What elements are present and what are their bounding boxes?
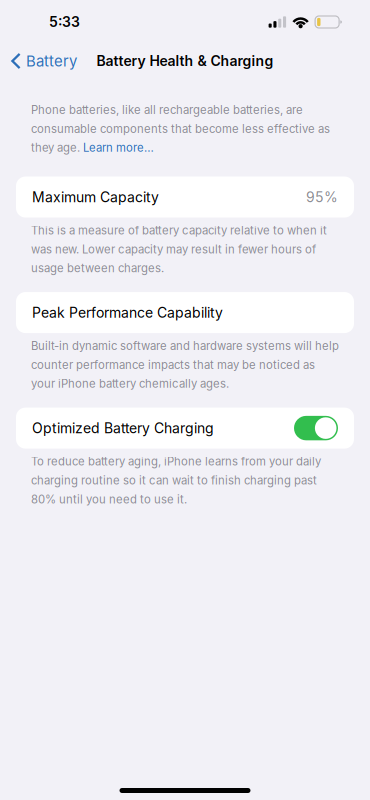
button[interactable]: Maximum Capacity: [16, 176, 354, 217]
staticText: Peak Performance Capability: [32, 304, 223, 321]
button[interactable]: Battery: [0, 46, 77, 76]
button[interactable]: Peak Performance Capability: [16, 292, 354, 333]
staticText: Maximum Capacity: [32, 189, 159, 205]
staticText: Battery Health & Charging: [96, 52, 273, 69]
staticText: Built-in dynamic software and hardware s…: [31, 339, 339, 391]
staticText: Phone batteries, like all rechargeable b…: [31, 103, 330, 154]
staticText: 95%: [306, 189, 338, 205]
staticText: To reduce battery aging, iPhone learns f…: [31, 455, 321, 506]
button[interactable]: Optimized Battery Charging: [16, 408, 354, 449]
staticText: Optimized Battery Charging: [32, 420, 214, 436]
staticText: 5:33: [49, 13, 80, 30]
staticText: This is a measure of battery capacity re…: [31, 223, 327, 275]
staticText: Battery: [26, 52, 77, 70]
